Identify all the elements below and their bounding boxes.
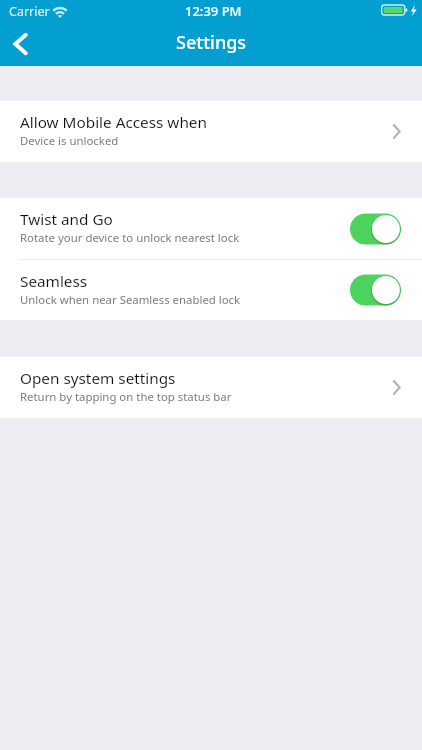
button[interactable]: Allow Mobile Access when bbox=[0, 101, 422, 162]
button[interactable]: Twist and Go bbox=[0, 198, 422, 259]
button[interactable]: Open system settings bbox=[0, 357, 422, 418]
staticText: Rotate your device to unlock nearest loc… bbox=[20, 230, 240, 246]
staticText: Device is unlocked bbox=[20, 133, 119, 149]
staticText: Return by tapping on the top status bar bbox=[20, 389, 232, 405]
staticText: Allow Mobile Access when bbox=[20, 112, 207, 133]
staticText: 12:39 PM bbox=[185, 2, 242, 20]
button[interactable]: Seamless bbox=[0, 260, 422, 320]
button[interactable]: Seamless switch, on bbox=[350, 274, 401, 306]
staticText: Settings bbox=[176, 30, 247, 55]
button[interactable]: Twist and Go switch, on bbox=[350, 213, 401, 245]
staticText: Seamless bbox=[20, 271, 88, 292]
button[interactable]: Back bbox=[0, 22, 40, 66]
staticText: Twist and Go bbox=[20, 209, 113, 230]
staticText: Unlock when near Seamless enabled lock bbox=[20, 292, 241, 308]
staticText: Carrier bbox=[9, 3, 50, 20]
staticText: Open system settings bbox=[20, 368, 176, 389]
